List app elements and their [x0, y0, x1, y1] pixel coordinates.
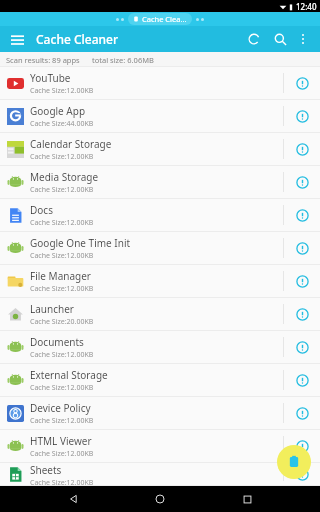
staticText: Media Storage — [30, 170, 99, 184]
staticText: Cache Clea… — [142, 14, 187, 24]
staticText: Documents — [30, 335, 84, 349]
button[interactable]: Media Storage — [0, 166, 320, 199]
button[interactable]: Recent apps — [234, 486, 260, 512]
button[interactable]: HTML Viewer — [0, 430, 320, 463]
staticText: Cache Size:12.00KB — [30, 350, 94, 360]
staticText: Cache Size:44.00KB — [30, 119, 94, 129]
staticText: Cache Size:12.00KB — [30, 251, 94, 261]
staticText: Cache Size:12.00KB — [30, 416, 94, 426]
button[interactable]: App info — [284, 430, 320, 462]
staticText: Cache Size:12.00KB — [30, 284, 94, 294]
staticText: Cache Size:20.00KB — [30, 317, 94, 327]
button[interactable]: Docs — [0, 199, 320, 232]
staticText: Scan results: 89 apps — [6, 55, 80, 65]
staticText: Cache Size:12.00KB — [30, 185, 94, 195]
button[interactable]: Refresh — [244, 29, 264, 49]
button[interactable]: App info — [284, 397, 320, 429]
button[interactable]: Launcher — [0, 298, 320, 331]
button[interactable]: Menu — [8, 30, 26, 48]
staticText: total size: 6.06MB — [92, 55, 154, 65]
button[interactable]: App info — [284, 265, 320, 297]
staticText: Cache Cleaner — [36, 31, 119, 47]
button[interactable]: App info — [284, 331, 320, 363]
staticText: Cache Size:12.00KB — [30, 383, 94, 393]
button[interactable]: App info — [284, 232, 320, 264]
button[interactable]: Home — [147, 486, 173, 512]
button[interactable]: More options — [294, 30, 312, 48]
button[interactable]: Back — [61, 486, 87, 512]
button[interactable]: App info — [284, 298, 320, 330]
button[interactable]: Search — [270, 29, 290, 49]
staticText: Google One Time Init — [30, 236, 131, 250]
staticText: Docs — [30, 203, 53, 217]
button[interactable]: Google App — [0, 100, 320, 133]
button[interactable]: App info — [284, 67, 320, 99]
button[interactable]: File Manager — [0, 265, 320, 298]
staticText: External Storage — [30, 368, 108, 382]
button[interactable]: Device Policy — [0, 397, 320, 430]
button[interactable]: Calendar Storage — [0, 133, 320, 166]
staticText: Launcher — [30, 302, 74, 316]
staticText: Cache Size:12.00KB — [30, 449, 94, 459]
staticText: 12:40 — [296, 1, 317, 12]
button[interactable]: App info — [284, 463, 320, 485]
staticText: Google App — [30, 104, 86, 118]
staticText: YouTube — [30, 71, 71, 85]
button[interactable]: Documents — [0, 331, 320, 364]
staticText: Calendar Storage — [30, 137, 112, 151]
button[interactable]: App info — [284, 199, 320, 231]
staticText: Cache Size:12.00KB — [30, 218, 94, 228]
button[interactable]: Cache Clea… — [133, 14, 187, 24]
staticText: Cache Size:12.00KB — [30, 152, 94, 162]
staticText: Cache Size:12.00KB — [30, 86, 94, 96]
staticText: Device Policy — [30, 401, 91, 415]
button[interactable]: Clean cache — [277, 445, 311, 479]
button[interactable]: Google One Time Init — [0, 232, 320, 265]
button[interactable]: YouTube — [0, 67, 320, 100]
button[interactable]: App info — [284, 166, 320, 198]
button[interactable]: External Storage — [0, 364, 320, 397]
button[interactable]: App info — [284, 364, 320, 396]
staticText: File Manager — [30, 269, 91, 283]
button[interactable]: App info — [284, 133, 320, 165]
button[interactable]: Sheets — [0, 463, 320, 486]
staticText: Sheets — [30, 463, 62, 477]
button[interactable]: App info — [284, 100, 320, 132]
staticText: HTML Viewer — [30, 434, 92, 448]
staticText: Cache Size:12.00KB — [30, 478, 94, 485]
